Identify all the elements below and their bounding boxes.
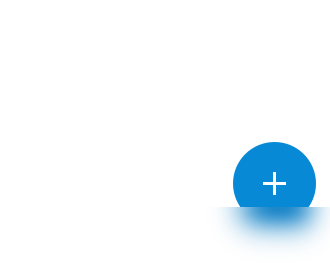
button[interactable]: Add <box>233 142 316 225</box>
